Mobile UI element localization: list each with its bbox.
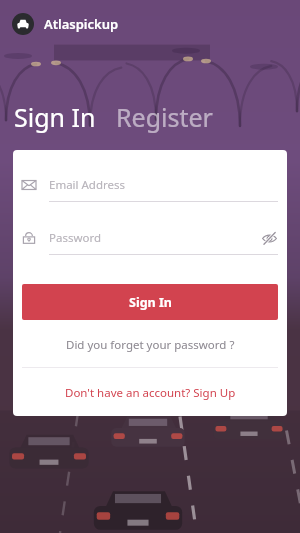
staticText: Sign In [14, 100, 96, 134]
staticText: Sign In [129, 294, 172, 311]
button[interactable]: Don't have an account? Sign Up [22, 385, 278, 401]
button[interactable]: Sign In [14, 100, 100, 134]
button[interactable]: Did you forget your password ? [22, 337, 278, 353]
staticText: Don't have an account? Sign Up [65, 385, 236, 401]
button[interactable]: Show password [260, 229, 278, 247]
staticText: Register [116, 100, 213, 134]
button[interactable]: Sign In [22, 284, 278, 320]
staticText: Password [49, 230, 102, 246]
button[interactable]: Register [116, 100, 213, 134]
staticText: Atlaspickup [44, 15, 119, 33]
staticText: Email Address [49, 177, 126, 193]
staticText: Did you forget your password ? [66, 337, 235, 353]
button[interactable]: Atlaspickup logo [12, 13, 34, 35]
